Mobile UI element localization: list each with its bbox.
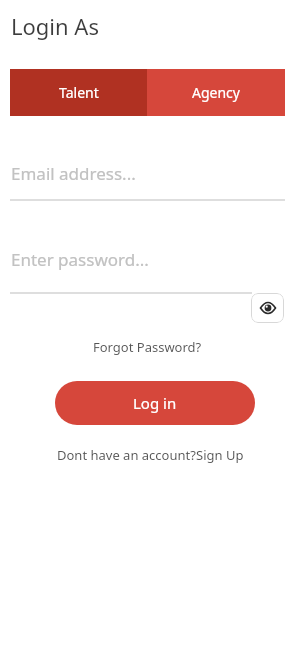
button[interactable] [251, 293, 284, 323]
staticText: Agency [192, 83, 240, 102]
staticText: Log in [133, 393, 177, 413]
staticText: Talent [59, 83, 99, 102]
staticText: Enter password... [11, 248, 149, 271]
button[interactable]: Log in [55, 381, 255, 425]
button[interactable]: Sign Up [196, 446, 244, 464]
staticText: Dont have an account? [57, 446, 196, 464]
button[interactable]: Forgot Password? [93, 338, 202, 356]
button[interactable]: Agency [147, 69, 285, 116]
staticText: Login As [11, 11, 99, 41]
button[interactable]: Talent [10, 69, 147, 116]
staticText: Email address... [11, 162, 136, 185]
